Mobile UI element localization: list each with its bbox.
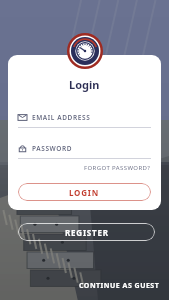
staticText: LOGIN	[69, 187, 100, 198]
staticText: FORGOT PASSWORD?	[84, 164, 151, 172]
button[interactable]: CONTINUE AS GUEST	[79, 277, 169, 300]
staticText: REGISTER	[65, 227, 109, 238]
button[interactable]: PASSWORD	[18, 144, 151, 153]
button[interactable]: LOGIN	[18, 183, 151, 201]
button[interactable]: EMAIL ADDRESS	[18, 113, 151, 122]
button[interactable]: REGISTER	[18, 223, 155, 241]
button[interactable]: FORGOT PASSWORD?	[18, 162, 151, 174]
staticText: CONTINUE AS GUEST	[79, 281, 160, 291]
staticText: EMAIL ADDRESS	[32, 113, 91, 122]
staticText: Login	[69, 77, 100, 92]
staticText: PASSWORD	[32, 144, 73, 153]
